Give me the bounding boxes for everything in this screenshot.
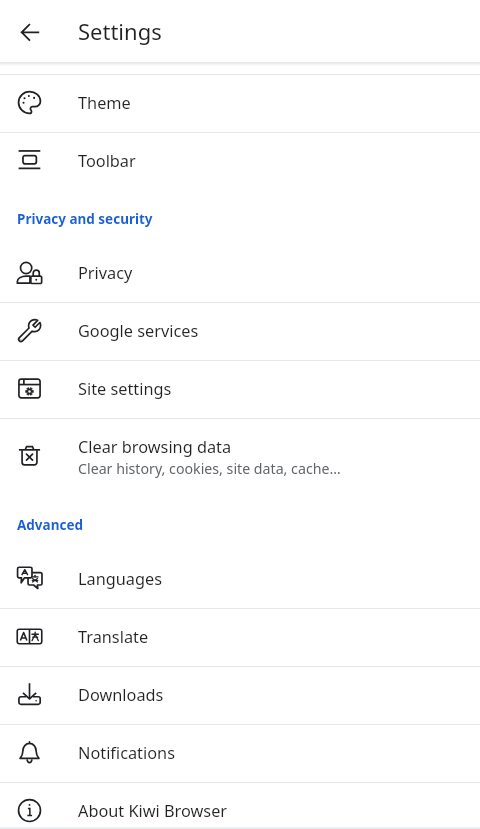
button[interactable]: Downloads <box>0 667 480 725</box>
button[interactable]: Languages <box>0 551 480 609</box>
staticText: Toolbar <box>78 150 136 172</box>
button[interactable]: Toolbar <box>0 133 480 191</box>
button[interactable]: Clear browsing data <box>0 419 480 497</box>
staticText: Translate <box>78 626 149 648</box>
button[interactable]: Google services <box>0 303 480 361</box>
staticText: Privacy <box>78 262 133 284</box>
staticText: Settings <box>78 16 162 46</box>
button[interactable]: Translate <box>0 609 480 667</box>
staticText: Site settings <box>78 378 172 400</box>
button[interactable]: Theme <box>0 75 480 133</box>
staticText: Privacy and security <box>17 210 153 228</box>
button[interactable]: Privacy <box>0 245 480 303</box>
staticText: Clear history, cookies, site data, cache… <box>78 459 341 478</box>
staticText: Google services <box>78 320 199 342</box>
button[interactable]: About Kiwi Browser <box>0 783 480 829</box>
button[interactable]: Notifications <box>0 725 480 783</box>
staticText: Advanced <box>17 516 84 534</box>
staticText: Clear browsing data <box>78 436 232 458</box>
staticText: About Kiwi Browser <box>78 800 228 822</box>
button[interactable]: Back <box>10 11 50 51</box>
staticText: Downloads <box>78 684 164 706</box>
staticText: Notifications <box>78 742 175 764</box>
staticText: Theme <box>78 92 131 114</box>
button[interactable]: Site settings <box>0 361 480 419</box>
staticText: Languages <box>78 568 163 590</box>
